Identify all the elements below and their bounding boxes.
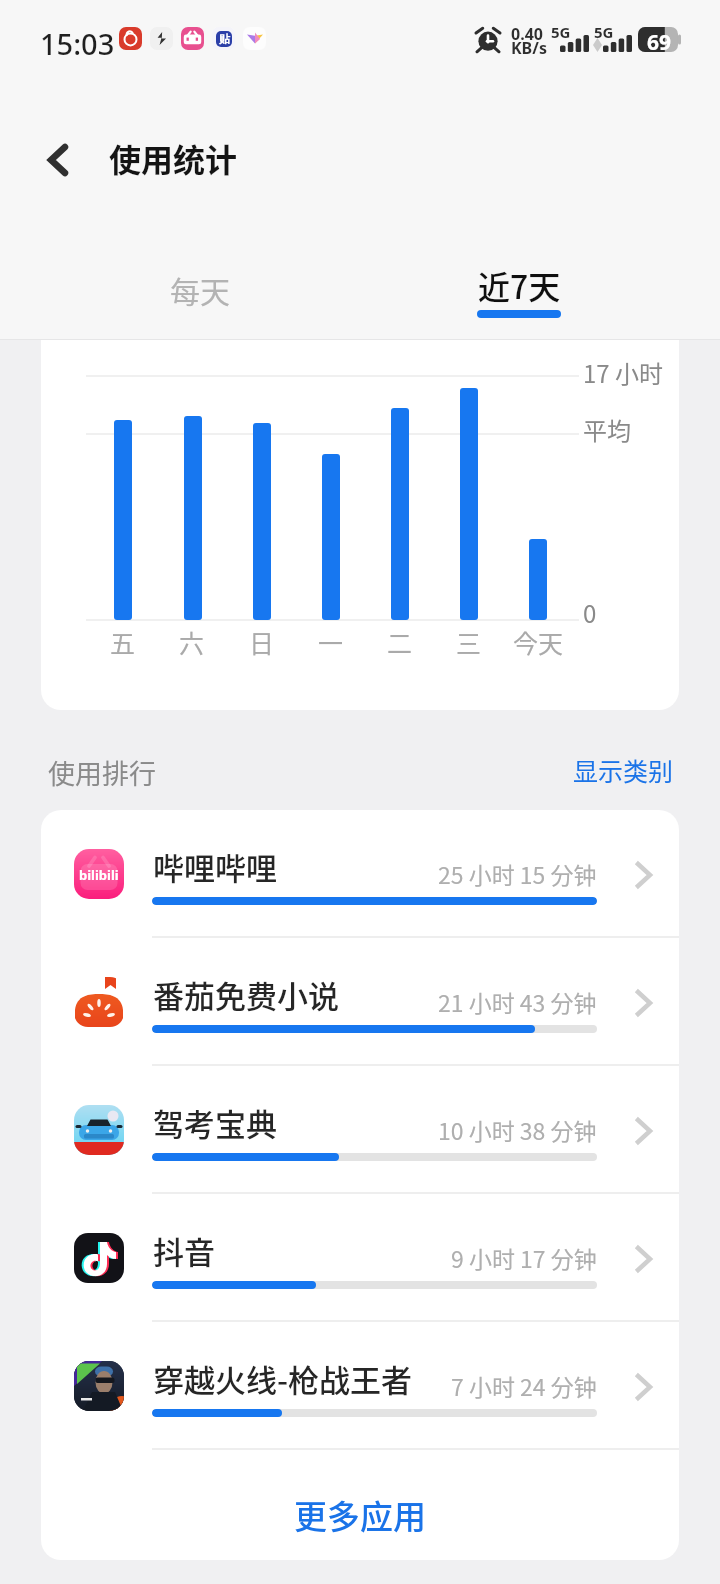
button[interactable]: 番茄免费小说 [41,938,679,1064]
staticText: 0 [583,595,597,630]
staticText: 哔哩哔哩 [153,844,277,889]
staticText: 使用排行 [48,753,156,792]
staticText: 一 [318,624,344,660]
staticText: 21 小时 43 分钟 [438,985,597,1018]
staticText: bilibili [79,866,119,884]
staticText: KB/s [511,37,547,59]
staticText: 抖音 [153,1228,215,1273]
staticText: 近7天 [478,262,561,308]
button[interactable]: 驾考宝典 [41,1066,679,1192]
button[interactable]: Back [24,126,92,194]
staticText: 7 小时 24 分钟 [451,1369,597,1402]
staticText: 10 小时 38 分钟 [438,1113,597,1146]
staticText: 番茄免费小说 [153,972,339,1017]
staticText: 二 [387,624,413,660]
staticText: 25 小时 15 分钟 [438,857,597,890]
staticText: 贴 [219,32,230,46]
button[interactable]: 更多应用 [41,1450,679,1560]
staticText: 使用统计 [109,135,238,181]
staticText: 三 [456,624,482,660]
button[interactable]: 显示类别 [566,744,680,796]
button[interactable]: 穿越火线-枪战王者 [41,1322,679,1448]
staticText: 5G [594,22,614,42]
staticText: 5G [551,22,571,42]
staticText: 穿越火线-枪战王者 [153,1356,413,1401]
staticText: 显示类别 [573,752,674,788]
staticText: 0.40 [511,23,543,45]
button[interactable]: 每天 [100,244,300,340]
staticText: 六 [179,624,205,660]
button[interactable]: 抖音 [41,1194,679,1320]
staticText: 更多应用 [294,1491,426,1539]
staticText: 17 小时 [583,355,664,390]
staticText: 15:03 [40,24,115,63]
staticText: 69 [647,28,672,53]
button[interactable]: bilibili [41,810,679,936]
staticText: 每天 [170,268,230,311]
staticText: 驾考宝典 [153,1100,277,1145]
staticText: 今天 [513,624,564,660]
staticText: 日 [249,624,275,660]
staticText: 五 [110,624,136,660]
staticText: 平均 [583,412,631,447]
button[interactable]: 近7天 [419,244,619,340]
staticText: 9 小时 17 分钟 [451,1241,597,1274]
